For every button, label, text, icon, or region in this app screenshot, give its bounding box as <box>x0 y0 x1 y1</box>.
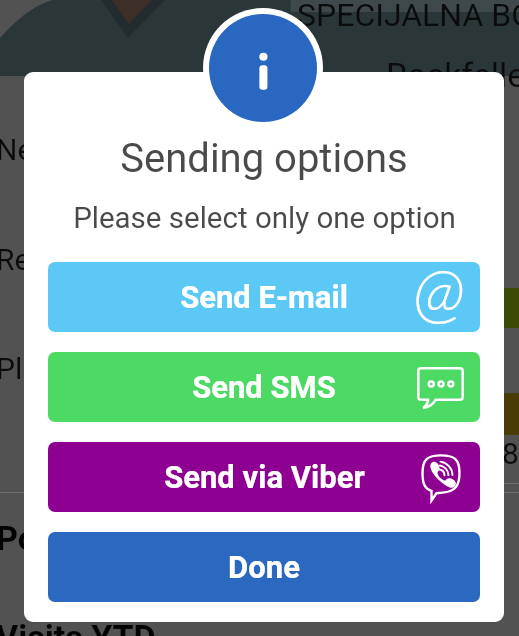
staticText: Send via Viber <box>164 459 365 495</box>
button[interactable]: Send via Viber <box>48 442 480 512</box>
other: Information <box>209 14 317 122</box>
staticText: Please select only one option <box>73 201 456 236</box>
staticText: @ <box>413 262 465 331</box>
staticText: Re <box>0 242 31 277</box>
staticText: Po <box>0 518 37 558</box>
staticText: Sending options <box>120 135 408 182</box>
staticText: Pla <box>0 351 39 386</box>
button[interactable]: Send E-mail <box>48 262 480 332</box>
button[interactable]: Send SMS <box>48 352 480 422</box>
staticText: Ne <box>0 132 34 167</box>
staticText: Done <box>228 549 300 585</box>
staticText: Send SMS <box>192 369 336 405</box>
staticText: Rockfelle <box>386 55 519 95</box>
button[interactable]: Done <box>48 532 480 602</box>
staticText: 8 <box>502 436 519 471</box>
staticText: Send E-mail <box>180 279 348 315</box>
staticText: Visits YTD <box>0 617 156 636</box>
staticText: SPECIJALNA BO <box>297 0 519 34</box>
